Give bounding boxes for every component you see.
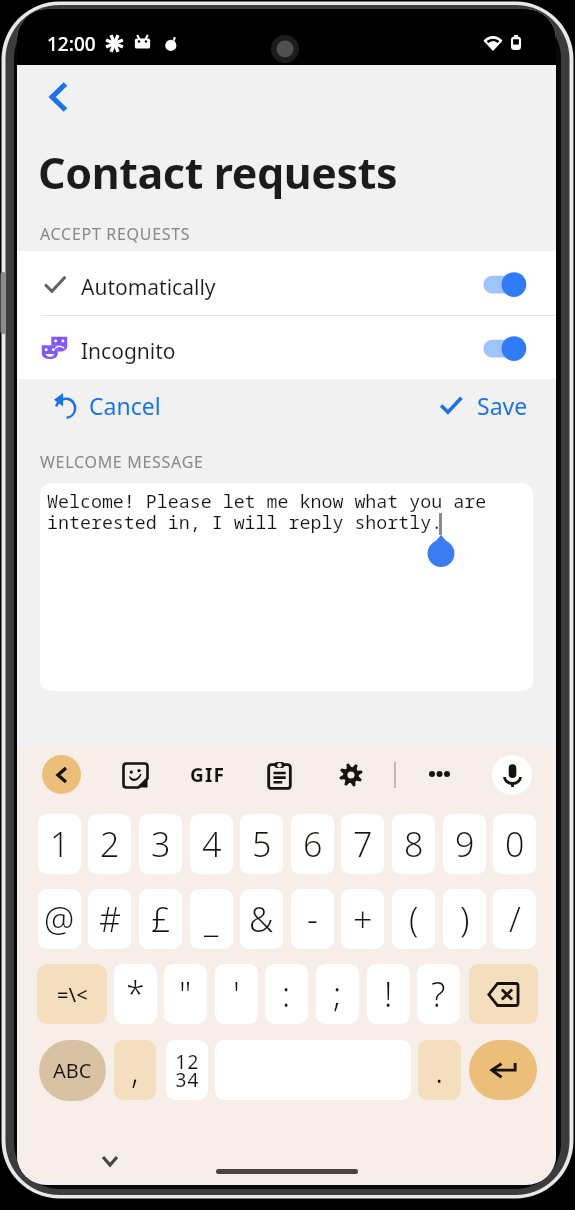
button[interactable]: , — [114, 1040, 156, 1100]
button[interactable]: GIF — [185, 759, 231, 790]
staticText: 6 — [303, 821, 323, 867]
button[interactable]: ? — [417, 964, 460, 1024]
button[interactable]: " — [164, 964, 207, 1024]
staticText: / — [509, 896, 521, 942]
staticText: 9 — [455, 821, 475, 867]
button[interactable]: Voice input — [492, 755, 532, 795]
button[interactable]: 6 — [291, 814, 334, 874]
button[interactable]: ABC — [39, 1040, 106, 1101]
button[interactable]: . — [418, 1040, 461, 1100]
staticText: 2 — [100, 821, 120, 867]
staticText: # — [99, 896, 121, 942]
staticText: £ — [151, 896, 171, 942]
button[interactable]: # — [88, 889, 131, 949]
button[interactable]: @ — [38, 889, 81, 949]
staticText: 5 — [252, 821, 272, 867]
button[interactable]: ! — [367, 964, 410, 1024]
button[interactable]: & — [240, 889, 283, 949]
button[interactable]: / — [493, 889, 536, 949]
button[interactable]: Toggle — [472, 327, 534, 367]
button[interactable]: Settings — [335, 759, 367, 791]
staticText: ( — [409, 896, 419, 942]
staticText: Contact requests — [38, 143, 398, 202]
staticText: _ — [204, 896, 219, 942]
button[interactable]: Enter — [469, 1040, 537, 1100]
staticText: Welcome! Please let me know what you are… — [47, 488, 487, 534]
staticText: Incognito — [81, 337, 176, 366]
staticText: 8 — [404, 821, 424, 867]
button[interactable]: Toggle — [472, 263, 534, 303]
staticText: =\< — [57, 981, 88, 1008]
button[interactable]: Hide keyboard — [98, 1152, 122, 1170]
staticText: ) — [460, 896, 470, 942]
button[interactable]: 9 — [443, 814, 486, 874]
button[interactable]: 2 — [88, 814, 131, 874]
staticText: Automatically — [81, 273, 216, 302]
button[interactable]: Toggle — [17, 251, 556, 315]
staticText: ' — [233, 971, 240, 1017]
button[interactable]: Backspace — [469, 964, 538, 1024]
button[interactable]: ( — [392, 889, 435, 949]
button[interactable]: 4 — [190, 814, 233, 874]
button[interactable]: £ — [139, 889, 182, 949]
button[interactable]: 12 34 — [166, 1040, 208, 1100]
staticText: 3 — [151, 821, 171, 867]
staticText: 7 — [353, 821, 373, 867]
button[interactable]: * — [114, 964, 157, 1024]
staticText: : — [282, 971, 291, 1017]
staticText: . — [435, 1047, 444, 1093]
staticText: ! — [384, 971, 393, 1017]
button[interactable]: Cancel — [53, 390, 161, 420]
button[interactable]: 7 — [341, 814, 384, 874]
button[interactable]: Toggle — [17, 315, 556, 379]
button[interactable]: Welcome! Please let me know what you are… — [40, 483, 533, 691]
staticText: 12:00 — [47, 31, 96, 57]
staticText: @ — [44, 896, 75, 942]
staticText: 4 — [202, 821, 222, 867]
button[interactable]: ) — [443, 889, 486, 949]
staticText: ACCEPT REQUESTS — [40, 223, 191, 245]
button[interactable]: Clipboard — [263, 759, 295, 791]
button[interactable]: 3 — [139, 814, 182, 874]
staticText: 12 34 — [175, 1049, 200, 1092]
button[interactable]: 1 — [38, 814, 81, 874]
staticText: GIF — [190, 762, 226, 788]
staticText: & — [249, 896, 274, 942]
button[interactable]: 0 — [493, 814, 536, 874]
button[interactable]: Save — [438, 390, 528, 420]
button[interactable]: 8 — [392, 814, 435, 874]
staticText: " — [179, 971, 192, 1017]
button[interactable]: =\< — [37, 964, 107, 1024]
button[interactable]: ' — [215, 964, 258, 1024]
button[interactable]: Back — [33, 71, 85, 123]
button[interactable]: : — [265, 964, 308, 1024]
button[interactable]: 5 — [240, 814, 283, 874]
staticText: - — [307, 896, 318, 942]
staticText: ? — [431, 971, 446, 1017]
staticText: + — [353, 896, 373, 942]
staticText: WELCOME MESSAGE — [40, 451, 204, 473]
button[interactable]: More options — [421, 758, 457, 790]
staticText: 0 — [505, 821, 525, 867]
staticText: , — [131, 1047, 139, 1093]
staticText: 1 — [50, 821, 70, 867]
button[interactable]: Back — [42, 755, 81, 794]
button[interactable]: ; — [316, 964, 359, 1024]
button[interactable]: Stickers — [119, 759, 151, 791]
staticText: ; — [333, 971, 342, 1017]
button[interactable]: _ — [190, 889, 233, 949]
button[interactable]: - — [291, 889, 334, 949]
staticText: * — [126, 971, 145, 1017]
button[interactable]: + — [341, 889, 384, 949]
staticText: ABC — [53, 1057, 92, 1084]
staticText: Cancel — [89, 390, 161, 420]
staticText: Save — [477, 390, 528, 420]
